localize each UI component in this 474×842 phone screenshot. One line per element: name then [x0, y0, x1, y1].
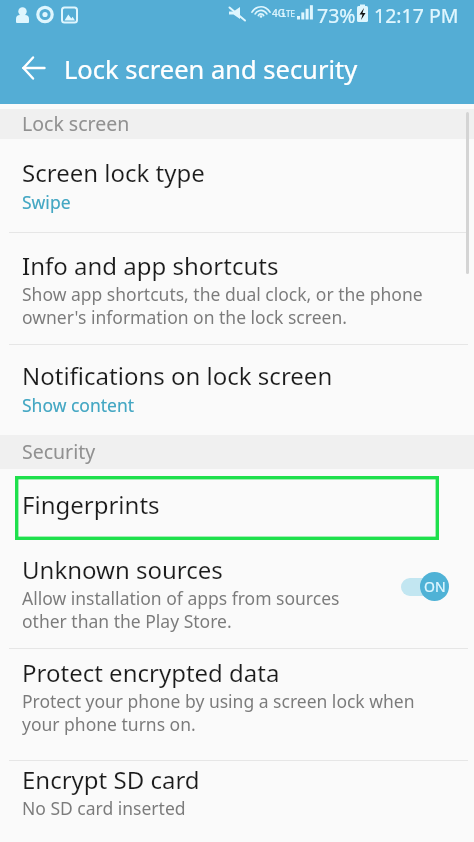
staticText: Info and app shortcuts: [22, 249, 279, 282]
staticText: Show app shortcuts, the dual clock, or t…: [22, 282, 423, 329]
button[interactable]: Screen lock type: [0, 139, 474, 232]
staticText: Fingerprints: [22, 488, 160, 521]
button[interactable]: Protect encrypted data: [0, 649, 474, 760]
staticText: Screen lock type: [22, 156, 205, 189]
button[interactable]: Encrypt SD card: [0, 761, 474, 842]
staticText: Unknown sources: [22, 553, 223, 586]
button[interactable]: Notifications on lock screen: [0, 345, 474, 435]
staticText: Security: [22, 438, 96, 465]
staticText: Lock screen: [22, 110, 130, 137]
button[interactable]: Info and app shortcuts: [0, 233, 474, 344]
staticText: Protect your phone by using a screen loc…: [22, 689, 415, 736]
button[interactable]: Fingerprints: [15, 476, 439, 540]
staticText: Swipe: [22, 190, 71, 214]
staticText: LTE: [282, 8, 295, 19]
staticText: Show content: [22, 393, 135, 417]
staticText: No SD card inserted: [22, 796, 186, 820]
staticText: Notifications on lock screen: [22, 359, 333, 392]
staticText: 4G: [272, 6, 285, 20]
button[interactable]: Navigate up: [10, 44, 58, 92]
staticText: Encrypt SD card: [22, 763, 200, 796]
staticText: Lock screen and security: [64, 52, 358, 87]
staticText: Protect encrypted data: [22, 656, 280, 689]
staticText: 73%: [317, 2, 356, 29]
staticText: 12:17 PM: [374, 2, 459, 29]
staticText: Allow installation of apps from sources …: [22, 586, 340, 633]
staticText: ON: [424, 577, 446, 596]
button[interactable]: Unknown sources: [0, 540, 474, 648]
